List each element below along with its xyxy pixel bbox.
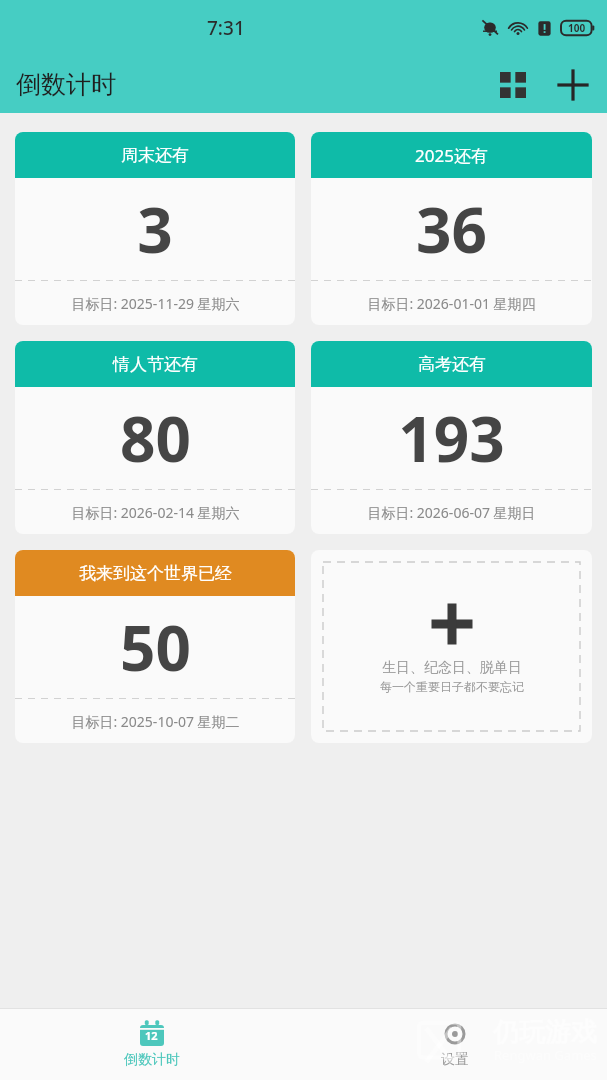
staticText: 36 bbox=[416, 187, 487, 271]
staticText: 情人节还有 bbox=[113, 354, 198, 375]
staticText: 目标日: 2026-02-14 星期六 bbox=[71, 503, 240, 522]
staticText: 2025还有 bbox=[415, 144, 488, 167]
staticText: 生日、纪念日、脱单日 bbox=[382, 659, 522, 677]
button[interactable]: 2025还有 bbox=[311, 132, 592, 325]
staticText: 目标日: 2025-11-29 星期六 bbox=[71, 294, 240, 313]
staticText: 50 bbox=[120, 605, 191, 689]
staticText: 目标日: 2026-01-01 星期四 bbox=[367, 294, 536, 313]
staticText: 100 bbox=[568, 21, 586, 35]
button[interactable]: Grid view bbox=[489, 61, 537, 109]
staticText: 目标日: 2026-06-07 星期日 bbox=[367, 503, 536, 522]
staticText: 我来到这个世界已经 bbox=[79, 563, 232, 584]
staticText: 周末还有 bbox=[121, 145, 189, 166]
button[interactable]: 设置 bbox=[303, 1008, 607, 1080]
staticText: 目标日: 2025-10-07 星期二 bbox=[71, 712, 240, 731]
staticText: 设置 bbox=[441, 1051, 469, 1069]
button[interactable]: Add bbox=[549, 61, 597, 109]
button[interactable]: 高考还有 bbox=[311, 341, 592, 534]
staticText: 3 bbox=[137, 187, 173, 271]
button[interactable]: 倒数计时 bbox=[0, 1008, 303, 1080]
staticText: 12 bbox=[145, 1028, 158, 1043]
staticText: 80 bbox=[120, 396, 191, 480]
staticText: 倒数计时 bbox=[16, 69, 116, 100]
button[interactable]: Add countdown bbox=[311, 550, 592, 743]
button[interactable]: 情人节还有 bbox=[15, 341, 295, 534]
button[interactable]: 周末还有 bbox=[15, 132, 295, 325]
staticText: 7:31 bbox=[207, 15, 245, 41]
button[interactable]: 我来到这个世界已经 bbox=[15, 550, 295, 743]
staticText: 高考还有 bbox=[418, 354, 486, 375]
staticText: 每一个重要日子都不要忘记 bbox=[380, 679, 524, 694]
staticText: 倒数计时 bbox=[124, 1051, 180, 1069]
staticText: 193 bbox=[398, 396, 505, 480]
